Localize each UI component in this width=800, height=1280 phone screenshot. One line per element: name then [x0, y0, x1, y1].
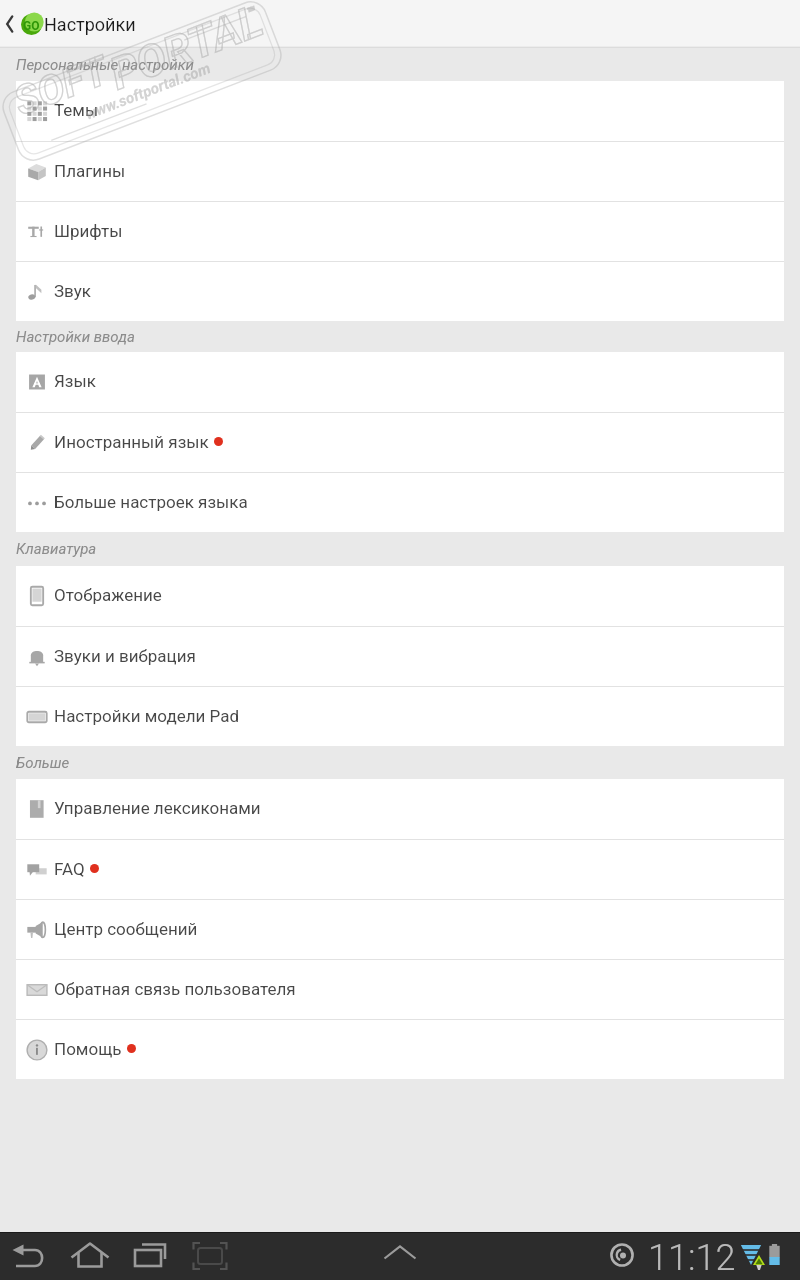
- button[interactable]: Show notifications: [376, 1232, 424, 1280]
- staticText: Больше настроек языка: [54, 492, 248, 512]
- staticText: Центр сообщений: [54, 919, 198, 939]
- button[interactable]: Центр сообщений: [16, 900, 784, 959]
- button[interactable]: Location: [610, 1243, 634, 1267]
- staticText: Темы: [54, 100, 99, 120]
- staticText: PORTAL: [103, 0, 270, 100]
- staticText: Обратная связь пользователя: [54, 979, 296, 999]
- button[interactable]: Recent apps: [126, 1232, 174, 1280]
- button[interactable]: Шрифты: [16, 202, 784, 261]
- button[interactable]: Иностранный язык: [16, 413, 784, 472]
- staticText: Иностранный язык: [54, 432, 209, 452]
- staticText: GO: [23, 19, 40, 33]
- button[interactable]: Управление лексиконами: [16, 779, 784, 839]
- staticText: Настройки: [44, 14, 136, 35]
- staticText: www.softportal.com: [83, 59, 213, 123]
- button[interactable]: Звук: [16, 262, 784, 321]
- other: Back: [3, 0, 19, 48]
- button[interactable]: Screenshot: [186, 1232, 234, 1280]
- button[interactable]: Больше настроек языка: [16, 473, 784, 532]
- button[interactable]: Помощь: [16, 1020, 784, 1079]
- button[interactable]: Темы: [16, 81, 784, 141]
- button[interactable]: Обратная связь пользователя: [16, 960, 784, 1019]
- button[interactable]: Плагины: [16, 142, 784, 201]
- staticText: Управление лексиконами: [54, 798, 261, 818]
- staticText: Звук: [54, 281, 91, 301]
- staticText: Настройки модели Pad: [54, 706, 240, 726]
- staticText: Помощь: [54, 1039, 122, 1059]
- button[interactable]: Back: [6, 1232, 54, 1280]
- staticText: Звуки и вибрация: [54, 646, 196, 666]
- staticText: Шрифты: [54, 221, 123, 241]
- staticText: ™: [245, 4, 258, 20]
- staticText: 11:12: [648, 1237, 736, 1279]
- staticText: Отображение: [54, 585, 162, 605]
- button[interactable]: Back: [0, 0, 148, 48]
- button[interactable]: Язык: [16, 352, 784, 412]
- staticText: Плагины: [54, 161, 126, 181]
- staticText: Настройки ввода: [16, 328, 135, 346]
- staticText: Персональные настройки: [16, 56, 195, 74]
- button[interactable]: Home: [66, 1232, 114, 1280]
- staticText: Больше: [16, 754, 70, 772]
- button[interactable]: Настройки модели Pad: [16, 687, 784, 746]
- staticText: SOFT: [8, 47, 115, 125]
- staticText: FAQ: [54, 859, 85, 879]
- staticText: Язык: [54, 371, 96, 391]
- button[interactable]: Звуки и вибрация: [16, 627, 784, 686]
- button[interactable]: FAQ: [16, 840, 784, 899]
- button[interactable]: Отображение: [16, 566, 784, 626]
- staticText: Клавиатура: [16, 540, 97, 558]
